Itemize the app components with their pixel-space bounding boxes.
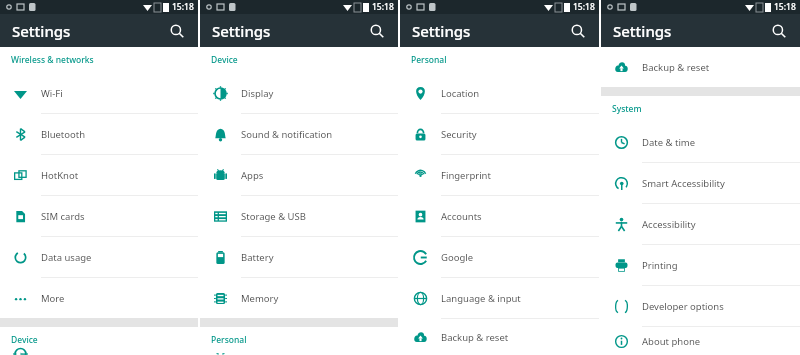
staticText: Printing [642, 259, 678, 272]
button[interactable]: Display [200, 73, 398, 114]
staticText: Accessibility [642, 218, 696, 231]
button[interactable]: Storage & USB [200, 196, 398, 237]
button[interactable]: Accounts [400, 196, 599, 237]
staticText: Wireless & networks [11, 54, 94, 66]
staticText: Language & input [441, 292, 521, 305]
button[interactable]: Search [164, 18, 190, 44]
staticText: Settings [12, 21, 71, 41]
staticText: Settings [613, 21, 672, 41]
button[interactable]: Location [200, 353, 398, 355]
staticText: System [612, 103, 642, 115]
staticText: Device [211, 54, 238, 66]
button[interactable]: Apps [200, 155, 398, 196]
staticText: 15:18 [372, 1, 394, 13]
button[interactable]: Accessibility [601, 204, 800, 245]
button[interactable]: HotKnot [0, 155, 198, 196]
staticText: Personal [211, 334, 247, 346]
staticText: Settings [412, 21, 471, 41]
button[interactable]: Data usage [0, 237, 198, 278]
button[interactable]: Search [766, 18, 792, 44]
button[interactable]: Fingerprint [400, 155, 599, 196]
staticText: Accounts [441, 210, 482, 223]
staticText: Wi-Fi [41, 87, 63, 100]
staticText: SIM cards [41, 210, 85, 223]
button[interactable]: Developer options [601, 286, 800, 327]
button[interactable]: Date & time [601, 122, 800, 163]
button[interactable]: Wi-Fi [0, 73, 198, 114]
staticText: Settings [212, 21, 271, 41]
staticText: Device [11, 334, 38, 346]
button[interactable]: Search [364, 18, 390, 44]
staticText: Apps [241, 169, 264, 182]
staticText: Developer options [642, 300, 724, 313]
button[interactable]: About phone [601, 327, 800, 355]
staticText: Data usage [41, 251, 92, 264]
button[interactable]: Smart Accessibility [601, 163, 800, 204]
button[interactable]: Printing [601, 245, 800, 286]
button[interactable]: Search [565, 18, 591, 44]
button[interactable]: Memory [200, 278, 398, 318]
staticText: Security [441, 128, 477, 141]
staticText: Sound & notification [241, 128, 333, 141]
staticText: Memory [241, 292, 279, 305]
button[interactable]: Language & input [400, 278, 599, 319]
staticText: Display [241, 87, 274, 100]
staticText: Backup & reset [642, 61, 710, 74]
staticText: Personal [411, 54, 447, 66]
staticText: Smart Accessibility [642, 177, 725, 190]
button[interactable]: Backup & reset [601, 47, 800, 87]
staticText: More [41, 292, 65, 305]
staticText: Location [441, 87, 480, 100]
staticText: HotKnot [41, 169, 79, 182]
staticText: 15:18 [573, 1, 595, 13]
staticText: Google [441, 251, 474, 264]
staticText: Storage & USB [241, 210, 306, 223]
button[interactable]: Display [0, 353, 198, 355]
staticText: Date & time [642, 136, 696, 149]
button[interactable]: Location [400, 73, 599, 114]
button[interactable]: More [0, 278, 198, 318]
staticText: Fingerprint [441, 169, 491, 182]
button[interactable]: Bluetooth [0, 114, 198, 155]
staticText: About phone [642, 335, 701, 348]
staticText: Bluetooth [41, 128, 86, 141]
button[interactable]: Backup & reset [400, 319, 599, 355]
button[interactable]: Sound & notification [200, 114, 398, 155]
button[interactable]: Battery [200, 237, 398, 278]
staticText: 15:18 [774, 1, 796, 13]
staticText: Battery [241, 251, 274, 264]
button[interactable]: Security [400, 114, 599, 155]
button[interactable]: SIM cards [0, 196, 198, 237]
staticText: Backup & reset [441, 331, 509, 344]
button[interactable]: Google [400, 237, 599, 278]
staticText: 15:18 [172, 1, 194, 13]
